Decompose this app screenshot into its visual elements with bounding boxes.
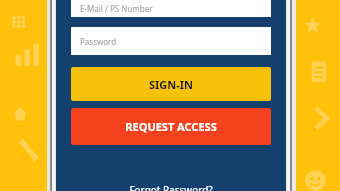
staticText: SIGN-IN	[149, 77, 193, 92]
staticText: Password	[80, 36, 117, 47]
button[interactable]: SIGN-IN	[71, 67, 271, 101]
staticText: Forgot Password?	[129, 183, 213, 191]
button[interactable]: E-Mail / PS Number	[71, 0, 271, 17]
staticText: E-Mail / PS Number	[80, 3, 153, 14]
button[interactable]: Password	[71, 27, 271, 55]
button[interactable]: Forgot Password?	[56, 183, 286, 191]
button[interactable]: REQUEST ACCESS	[71, 108, 271, 145]
staticText: REQUEST ACCESS	[125, 119, 217, 134]
